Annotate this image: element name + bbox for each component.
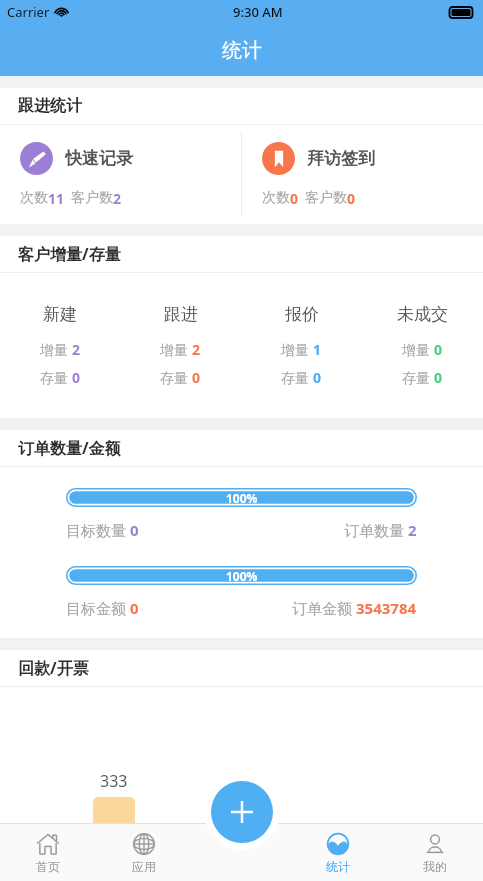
staticText: 9:30 AM (233, 3, 283, 21)
button[interactable]: 跟进 (120, 273, 241, 418)
staticText: 存量 (281, 368, 313, 387)
staticText: 跟进统计 (18, 96, 82, 116)
button[interactable]: 新建 (0, 273, 120, 418)
staticText: 客户数 (305, 189, 347, 207)
staticText: 0 (72, 368, 81, 387)
staticText: 3543784 (356, 598, 417, 618)
button[interactable]: 首页 (0, 824, 96, 881)
button[interactable]: 我的 (386, 824, 483, 881)
staticText: 2 (113, 189, 122, 208)
staticText: 快速记录 (65, 148, 133, 169)
button[interactable]: Add new (211, 781, 273, 843)
button[interactable]: 应用 (96, 824, 192, 881)
staticText: 存量 (402, 368, 434, 387)
staticText: Carrier (7, 3, 50, 21)
staticText: 0 (347, 189, 356, 208)
staticText: 增量 (160, 340, 192, 359)
staticText: 报价 (285, 304, 319, 325)
staticText: 存量 (160, 368, 192, 387)
staticText: 2 (408, 520, 417, 540)
staticText: 订单数量 (344, 520, 408, 540)
staticText: 统计 (222, 38, 262, 63)
staticText: 增量 (40, 340, 72, 359)
staticText: 0 (290, 189, 299, 208)
staticText: 统计 (326, 859, 350, 874)
staticText: 客户数 (71, 189, 113, 207)
staticText: 增量 (281, 340, 313, 359)
staticText: 我的 (423, 859, 447, 874)
staticText: 100% (226, 568, 258, 584)
staticText: 存量 (40, 368, 72, 387)
staticText: 0 (192, 368, 201, 387)
staticText: 未成交 (397, 304, 448, 325)
staticText: 0 (130, 598, 139, 618)
staticText: 次数 (262, 189, 290, 207)
staticText: 客户增量/存量 (18, 243, 121, 265)
staticText: 次数 (20, 189, 48, 207)
staticText: 目标金额 (66, 598, 130, 618)
staticText: 跟进 (164, 304, 198, 325)
staticText: 0 (434, 368, 443, 387)
staticText: 增量 (402, 340, 434, 359)
button[interactable]: 快速记录 (0, 125, 241, 224)
staticText: 订单金额 (292, 598, 356, 618)
staticText: 0 (313, 368, 322, 387)
staticText: 2 (192, 340, 201, 359)
staticText: 2 (72, 340, 81, 359)
staticText: 首页 (36, 859, 60, 874)
staticText: 应用 (132, 859, 156, 874)
staticText: 目标数量 (66, 520, 130, 540)
staticText: 新建 (43, 304, 77, 325)
button[interactable]: 报价 (241, 273, 362, 418)
button[interactable]: 统计 (289, 824, 386, 881)
staticText: 0 (130, 520, 139, 540)
staticText: 1 (313, 340, 322, 359)
button[interactable]: 未成交 (362, 273, 483, 418)
staticText: 0 (434, 340, 443, 359)
staticText: 拜访签到 (307, 148, 375, 169)
staticText: 回款/开票 (18, 657, 89, 679)
staticText: 订单数量/金额 (18, 437, 121, 459)
staticText: 100% (226, 490, 258, 506)
staticText: 11 (48, 189, 65, 208)
button[interactable]: 拜访签到 (242, 125, 483, 224)
staticText: 333 (100, 770, 128, 792)
